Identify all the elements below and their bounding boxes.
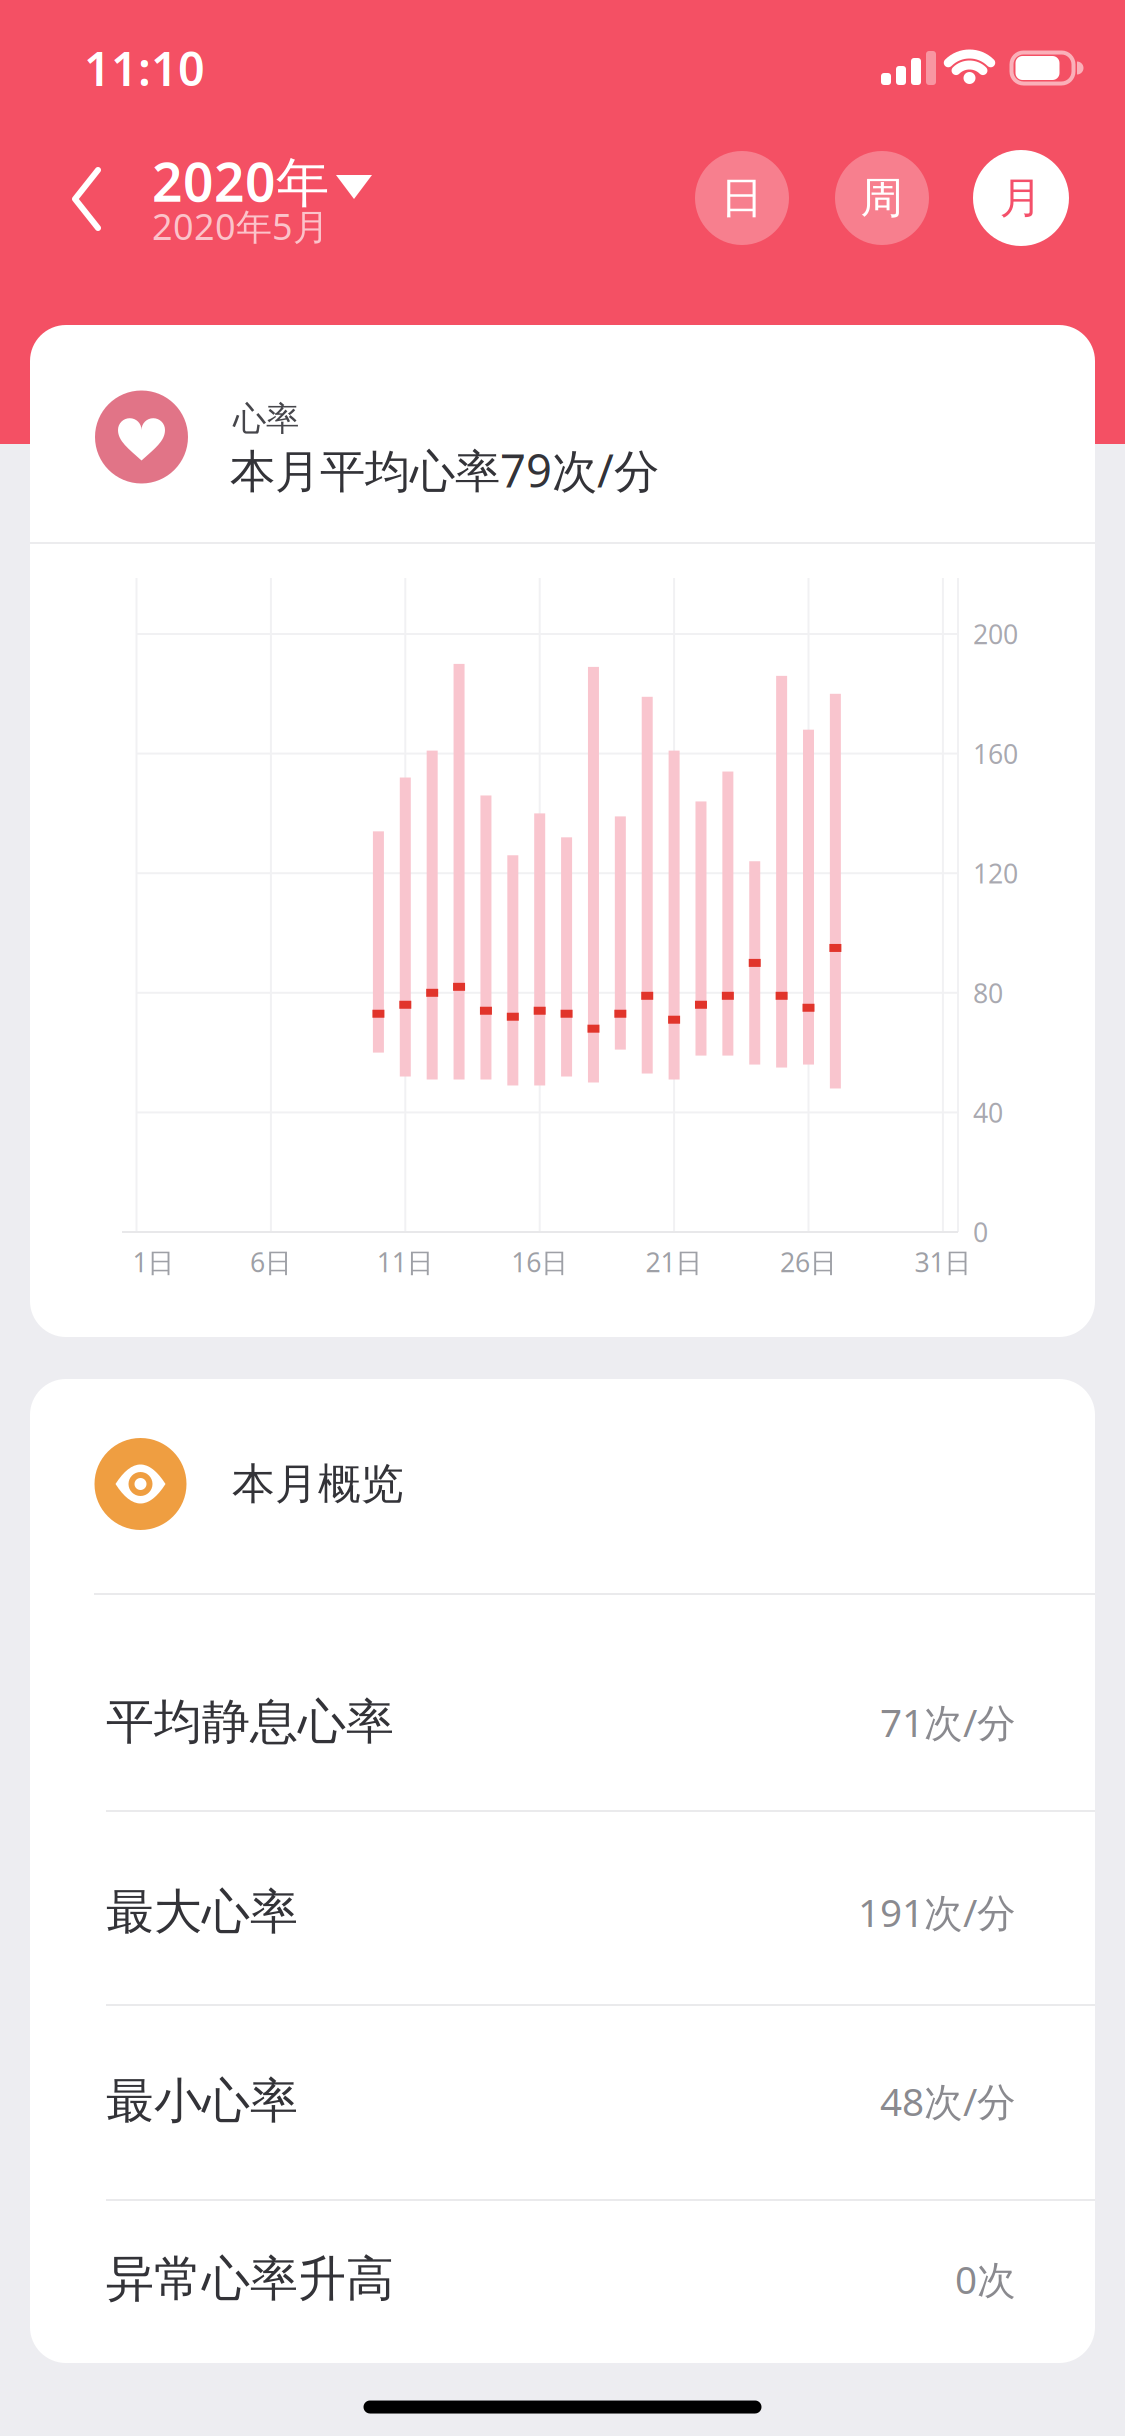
staticText: 1日 <box>132 1244 174 1280</box>
staticText: 0次 <box>955 2253 1016 2305</box>
staticText: 异常心率升高 <box>106 2249 394 2308</box>
staticText: 48次/分 <box>880 2075 1016 2127</box>
staticText: 11:10 <box>84 37 205 99</box>
button[interactable]: 日 <box>695 151 789 245</box>
staticText: 16日 <box>511 1244 568 1280</box>
staticText: 26日 <box>780 1244 837 1280</box>
staticText: 71次/分 <box>880 1696 1016 1748</box>
staticText: 心率 <box>233 398 299 439</box>
staticText: 191次/分 <box>858 1886 1016 1938</box>
button[interactable]: 周 <box>835 151 929 245</box>
staticText: 平均静息心率 <box>106 1692 394 1751</box>
staticText: 120 <box>973 855 1018 891</box>
button[interactable]: 月 <box>973 150 1069 246</box>
button[interactable]: 2020年 <box>152 132 492 262</box>
staticText: 160 <box>973 736 1018 771</box>
staticText: 31日 <box>914 1244 971 1280</box>
staticText: 日 <box>720 172 763 224</box>
button[interactable]: Back <box>60 163 116 235</box>
staticText: 80 <box>973 975 1003 1010</box>
staticText: 周 <box>860 172 903 224</box>
staticText: 最小心率 <box>106 2071 298 2130</box>
staticText: 本月概览 <box>232 1458 404 1510</box>
staticText: 11日 <box>377 1244 434 1280</box>
staticText: 200 <box>973 616 1018 652</box>
staticText: 6日 <box>250 1244 292 1280</box>
staticText: 21日 <box>646 1244 703 1280</box>
staticText: 月 <box>999 172 1042 224</box>
staticText: 最大心率 <box>106 1882 298 1941</box>
staticText: 2020年 <box>152 146 329 216</box>
staticText: 0 <box>973 1214 988 1250</box>
staticText: 40 <box>973 1095 1003 1130</box>
staticText: 本月平均心率79次/分 <box>230 440 659 500</box>
staticText: 2020年5月 <box>152 202 329 250</box>
